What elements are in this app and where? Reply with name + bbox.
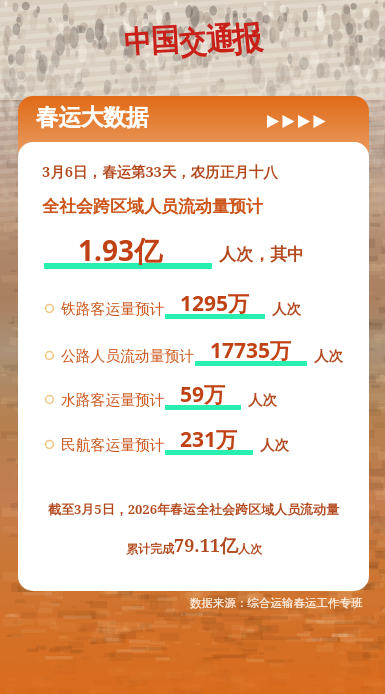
staticText: 春运大数据 (36, 103, 149, 131)
staticText: 累计完成 (126, 541, 174, 556)
staticText: 人次 (314, 347, 343, 365)
staticText: 人次 (260, 436, 289, 454)
staticText: 数据来源：综合运输春运工作专班 (190, 596, 363, 610)
staticText: 231万 (180, 425, 238, 454)
staticText: 民航客运量预计 (61, 436, 165, 455)
button[interactable]: 民航客运量预计 (18, 428, 369, 460)
staticText: 人次 (272, 300, 301, 318)
staticText: 全社会跨区域人员流动量预计 (42, 196, 263, 217)
staticText: 中 (123, 22, 152, 62)
staticText: 3月6日，春运第33天，农历正月十八 (42, 161, 278, 181)
staticText: 17735万 (210, 336, 292, 365)
staticText: 铁路客运量预计 (61, 300, 165, 319)
staticText: 1295万 (180, 289, 250, 318)
staticText: 人次 (238, 541, 262, 556)
staticText: 59万 (180, 380, 226, 409)
staticText: 人次 (248, 391, 277, 409)
staticText: 水路客运量预计 (61, 391, 165, 410)
staticText: 交 (177, 23, 208, 63)
staticText: 公路人员流动量预计 (61, 347, 195, 366)
staticText: 通 (205, 19, 235, 60)
staticText: 截至3月5日，2026年春运全社会跨区域人员流动量 (18, 500, 369, 518)
staticText: 1.93亿 (78, 231, 162, 269)
other: Play (267, 115, 329, 128)
button[interactable]: 春运大数据 (18, 96, 369, 152)
button[interactable]: 水路客运量预计 (18, 383, 369, 415)
staticText: 79.11亿 (174, 533, 238, 558)
staticText: 报 (230, 16, 264, 62)
button[interactable]: 公路人员流动量预计 (18, 339, 369, 371)
staticText: 国 (150, 20, 180, 61)
staticText: 人次，其中 (219, 244, 304, 265)
button[interactable]: 铁路客运量预计 (18, 292, 369, 324)
